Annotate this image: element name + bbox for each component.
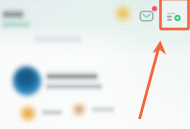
button[interactable]: Mail (136, 7, 156, 25)
button[interactable]: Tasks (162, 1, 188, 29)
